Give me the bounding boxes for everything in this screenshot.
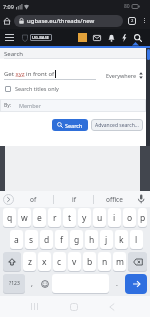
button[interactable] [3,252,21,271]
staticText: l [135,234,138,246]
button[interactable] [122,34,127,42]
staticText: p [140,212,146,224]
staticText: By: [4,102,12,109]
staticText: b [87,256,93,268]
button[interactable]: Advanced search... [91,119,143,131]
button[interactable]: UG-BASE [30,34,52,41]
button[interactable]: of [14,191,53,207]
button[interactable] [109,303,115,311]
button[interactable]: . [110,273,124,295]
button[interactable]: s [25,230,38,249]
button[interactable]: u [93,208,106,227]
button[interactable] [38,273,51,295]
button[interactable]: v [68,252,81,271]
staticText: 80 [124,3,130,10]
button[interactable]: Get xyz in front of [4,70,96,80]
button[interactable]: j [100,230,113,249]
staticText: , [31,279,33,289]
button[interactable]: g [70,230,83,249]
button[interactable] [31,303,38,310]
button[interactable] [70,303,78,311]
staticText: i [113,212,116,224]
button[interactable]: By: [0,99,146,112]
button[interactable]: ugbase.eu/threads/new [14,15,123,27]
staticText: z [28,256,32,268]
button[interactable]: l [130,230,143,249]
staticText: g [74,234,80,246]
staticText: Search titles only [15,85,59,92]
button[interactable]: Search titles only [5,85,59,92]
staticText: f [60,234,63,246]
button[interactable]: n [98,252,111,271]
staticText: c [57,256,62,268]
staticText: ?123 [9,280,20,287]
button[interactable]: b [83,252,96,271]
staticText: m [116,256,124,268]
staticText: a [14,234,19,246]
button[interactable]: a [10,230,23,249]
button[interactable]: c [53,252,66,271]
staticText: ugbase.eu/threads/new [27,17,95,25]
button[interactable]: z [23,252,36,271]
staticText: t [68,212,72,224]
button[interactable]: if [54,191,93,207]
staticText: . [116,279,118,289]
button[interactable]: r [48,208,61,227]
button[interactable] [93,35,101,41]
staticText: Member [19,102,41,109]
button[interactable]: w [18,208,31,227]
staticText: w [21,212,28,224]
button[interactable] [5,34,14,41]
staticText: of [30,195,37,204]
button[interactable] [3,194,14,205]
button[interactable] [125,274,147,294]
staticText: office [106,195,123,204]
button[interactable]: q [3,208,16,227]
staticText: d [44,234,50,246]
button[interactable]: d [40,230,53,249]
staticText: k [119,234,124,246]
button[interactable] [3,17,11,25]
staticText: j [105,234,108,246]
button[interactable]: office [94,191,135,207]
staticText: u [97,212,103,224]
button[interactable]: , [26,273,38,295]
staticText: Search [4,50,23,58]
staticText: x [42,256,47,268]
button[interactable]: Everywhere [106,72,143,79]
button[interactable] [141,18,147,23]
staticText: if [72,195,76,204]
button[interactable]: f [55,230,68,249]
staticText: s [29,234,34,246]
staticText: Advanced search... [95,122,139,129]
button[interactable]: m [113,252,126,271]
staticText: UG-BASE [32,35,50,40]
button[interactable] [128,252,147,271]
staticText: q [7,212,13,224]
button[interactable]: ?123 [3,274,25,293]
button[interactable]: 2 [128,17,136,25]
staticText: y [82,212,87,224]
button[interactable]: t [63,208,76,227]
button[interactable]: p [138,208,147,227]
button[interactable]: o [123,208,136,227]
button[interactable]: e [33,208,46,227]
button[interactable]: Search [52,119,88,131]
button[interactable] [135,193,147,205]
staticText: Everywhere [106,72,137,79]
button[interactable]: k [115,230,128,249]
button[interactable]: x [38,252,51,271]
staticText: e [37,212,42,224]
staticText: r [53,212,57,224]
staticText: Get xyz in front of [4,70,55,78]
button[interactable] [108,34,115,42]
button[interactable] [134,34,142,42]
staticText: n [102,256,108,268]
staticText: h [89,234,95,246]
button[interactable]: i [108,208,121,227]
staticText: o [127,212,133,224]
button[interactable]: y [78,208,91,227]
button[interactable]: h [85,230,98,249]
